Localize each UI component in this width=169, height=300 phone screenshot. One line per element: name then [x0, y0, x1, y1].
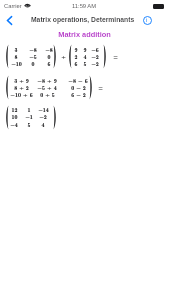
staticText: 8 + 2	[14, 83, 29, 92]
staticText: −5	[29, 52, 37, 61]
staticText: 2	[74, 52, 78, 61]
staticText: 0 + 5	[40, 90, 55, 99]
staticText: Matrix operations, Determinants	[31, 16, 135, 24]
staticText: 3	[14, 45, 18, 54]
staticText: 8	[14, 52, 18, 61]
staticText: +	[61, 52, 66, 61]
staticText: −10	[11, 59, 22, 68]
staticText: 9	[83, 45, 87, 54]
staticText: −2	[91, 59, 99, 68]
staticText: i	[146, 17, 148, 24]
staticText: −2	[39, 112, 47, 121]
staticText: 5	[83, 59, 87, 68]
staticText: −1	[25, 112, 33, 121]
staticText: 0 − 2	[71, 83, 86, 92]
staticText: −5 + 4	[37, 83, 57, 92]
staticText: −8	[45, 45, 53, 54]
staticText: 6 − 2	[71, 90, 86, 99]
staticText: 4	[41, 120, 45, 129]
staticText: 9	[74, 45, 78, 54]
staticText: −14	[38, 105, 49, 114]
staticText: 0	[31, 59, 35, 68]
button[interactable]: Back	[2, 13, 16, 27]
staticText: −10 + 6	[10, 90, 33, 99]
staticText: −8	[29, 45, 37, 54]
staticText: −5 + 4	[37, 83, 57, 92]
staticText: 0	[47, 52, 51, 61]
staticText: 3 + 9	[14, 76, 29, 85]
staticText: 6	[47, 59, 51, 68]
staticText: −8	[45, 45, 53, 54]
staticText: −2	[39, 112, 47, 121]
staticText: 4	[41, 120, 45, 129]
staticText: 0 + 5	[40, 90, 55, 99]
staticText: 6 − 2	[71, 90, 86, 99]
staticText: 4	[83, 52, 87, 61]
staticText: Matrix addition	[0, 30, 169, 38]
staticText: 6	[74, 59, 78, 68]
staticText: 12	[11, 105, 18, 114]
staticText: 0	[47, 52, 51, 61]
staticText: 2	[74, 52, 78, 61]
staticText: Carrier	[4, 3, 22, 9]
staticText: 9	[74, 45, 78, 54]
staticText: 10	[11, 112, 18, 121]
staticText: 12	[11, 105, 18, 114]
staticText: 8 + 2	[14, 83, 29, 92]
staticText: 5	[83, 59, 87, 68]
staticText: 10	[11, 112, 18, 121]
staticText: −1	[25, 112, 33, 121]
staticText: −8 + 9	[37, 76, 57, 85]
staticText: 1	[27, 105, 31, 114]
staticText: −8	[29, 45, 37, 54]
button[interactable]: Info	[140, 13, 154, 27]
staticText: 0 − 2	[71, 83, 86, 92]
staticText: −10	[11, 59, 22, 68]
staticText: 6	[74, 59, 78, 68]
staticText: −6	[91, 45, 99, 54]
staticText: 4	[83, 52, 87, 61]
staticText: 5	[27, 120, 31, 129]
staticText: −4	[10, 120, 18, 129]
staticText: =	[113, 52, 118, 61]
staticText: =	[113, 52, 118, 61]
staticText: −2	[91, 59, 99, 68]
staticText: 8	[14, 52, 18, 61]
staticText: 6	[47, 59, 51, 68]
staticText: −14	[38, 105, 49, 114]
staticText: −10 + 6	[10, 90, 33, 99]
staticText: −8 − 6	[68, 76, 88, 85]
staticText: 5	[27, 120, 31, 129]
staticText: −5	[29, 52, 37, 61]
staticText: −8 − 6	[68, 76, 88, 85]
staticText: +	[61, 52, 66, 61]
staticText: 0	[31, 59, 35, 68]
staticText: −4	[10, 120, 18, 129]
staticText: =	[98, 83, 103, 92]
staticText: 3 + 9	[14, 76, 29, 85]
staticText: −2	[91, 52, 99, 61]
staticText: 3	[14, 45, 18, 54]
staticText: 9	[83, 45, 87, 54]
staticText: 1	[27, 105, 31, 114]
staticText: −8 + 9	[37, 76, 57, 85]
staticText: 11:59 AM	[72, 3, 97, 9]
staticText: −2	[91, 52, 99, 61]
staticText: −6	[91, 45, 99, 54]
staticText: =	[98, 83, 103, 92]
